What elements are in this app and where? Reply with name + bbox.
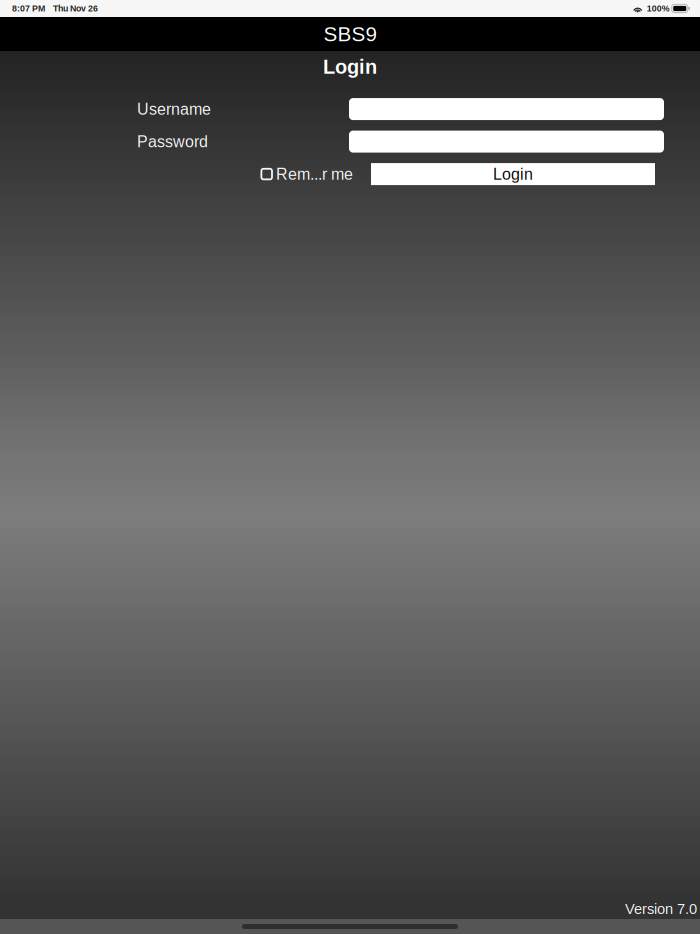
staticText: Rem...r me bbox=[276, 165, 353, 183]
staticText: 8:07 PM bbox=[12, 4, 45, 13]
staticText: Thu Nov 26 bbox=[53, 4, 98, 13]
button[interactable]: Login bbox=[371, 163, 655, 185]
staticText: Login bbox=[493, 165, 533, 183]
button[interactable]: Username bbox=[349, 98, 664, 120]
staticText: Username bbox=[137, 100, 211, 118]
staticText: Password bbox=[137, 133, 208, 151]
staticText: Version 7.0 bbox=[625, 901, 697, 917]
staticText: 100% bbox=[647, 4, 670, 13]
staticText: Login bbox=[323, 56, 377, 78]
button[interactable]: Rem...r me bbox=[261, 165, 353, 183]
staticText: SBS9 bbox=[323, 22, 376, 46]
button[interactable]: Password bbox=[349, 131, 664, 153]
